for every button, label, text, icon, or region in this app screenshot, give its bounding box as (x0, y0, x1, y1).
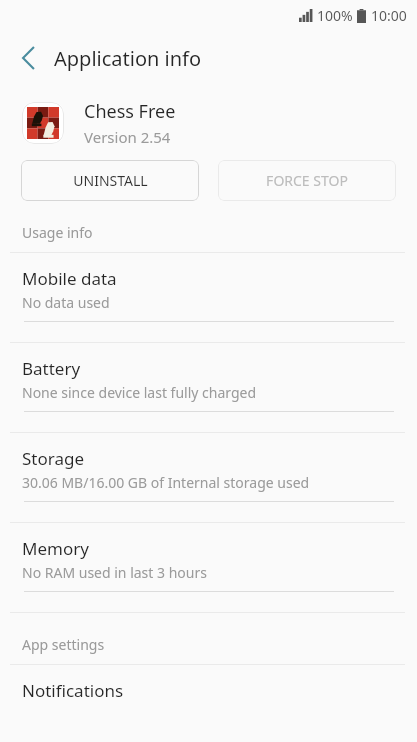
button[interactable]: Memory (0, 523, 417, 613)
staticText: 10:00 (371, 6, 407, 25)
button[interactable]: Mobile data (0, 253, 417, 343)
button[interactable]: FORCE STOP (218, 160, 396, 201)
staticText: Application info (54, 45, 202, 72)
staticText: Mobile data (22, 267, 117, 290)
staticText: UNINSTALL (73, 171, 148, 190)
staticText: Chess Free (84, 99, 176, 124)
button[interactable]: Battery (0, 343, 417, 433)
staticText: 30.06 MB/16.00 GB of Internal storage us… (22, 473, 310, 492)
staticText: 100% (317, 6, 353, 25)
staticText: Storage (22, 447, 85, 470)
staticText: No RAM used in last 3 hours (22, 563, 207, 582)
button[interactable]: Storage (0, 433, 417, 523)
staticText: No data used (22, 293, 110, 312)
staticText: Version 2.54 (84, 127, 171, 147)
staticText: Memory (22, 537, 89, 560)
button[interactable]: Back (10, 40, 46, 76)
button[interactable]: Notifications (0, 679, 417, 702)
button[interactable]: UNINSTALL (21, 160, 199, 201)
staticText: FORCE STOP (266, 171, 348, 190)
staticText: App settings (22, 635, 105, 654)
staticText: Battery (22, 357, 81, 380)
staticText: Usage info (22, 223, 93, 242)
staticText: None since device last fully charged (22, 383, 257, 402)
